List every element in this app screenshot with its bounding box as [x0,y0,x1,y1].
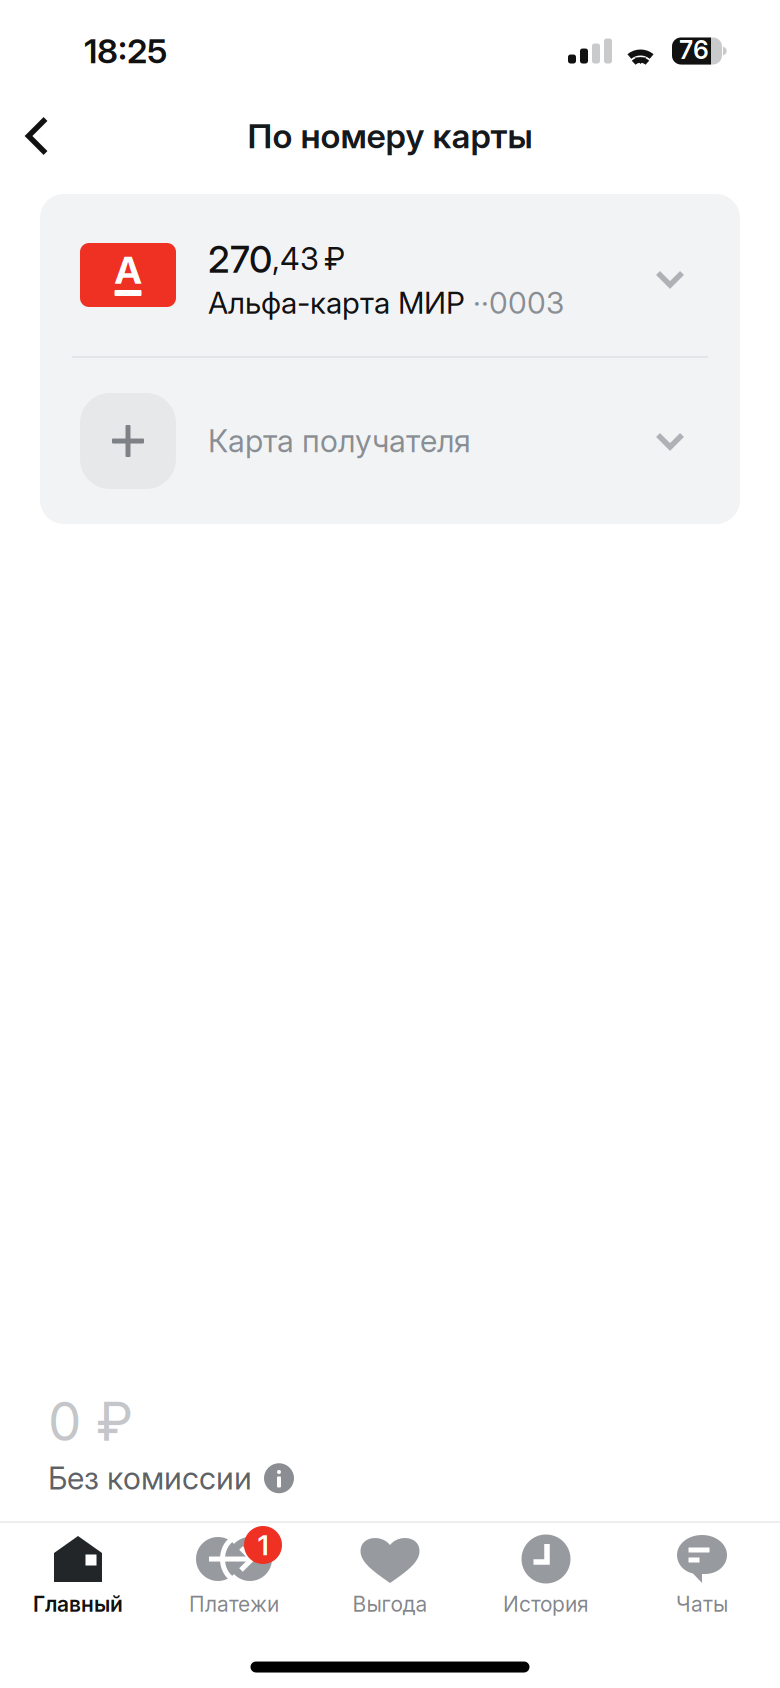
button[interactable]: Выгода [312,1525,468,1618]
staticText: 76 [679,35,709,65]
staticText: Без комиссии [48,1459,252,1497]
staticText: Карта получателя [208,422,471,460]
staticText: 0 ₽ [48,1389,133,1453]
button[interactable]: Главный [0,1525,156,1618]
staticText: ··0003 [473,285,564,321]
button[interactable]: История [468,1525,624,1618]
button[interactable]: Назад [0,102,72,169]
staticText: 270 [208,237,272,282]
staticText: Чаты [676,1591,728,1617]
staticText: Платежи [189,1591,279,1617]
staticText: История [503,1591,589,1617]
staticText: 18:25 [84,30,167,71]
staticText: По номеру карты [247,115,532,156]
button[interactable]: Карта получателя [40,358,740,524]
button[interactable]: A [40,194,740,356]
staticText: 1 [257,1528,268,1562]
staticText: Главный [33,1591,123,1617]
button[interactable]: 1 [156,1525,312,1618]
staticText: Выгода [352,1591,427,1617]
staticText: A [114,247,141,293]
staticText: ,43 ₽ [272,240,345,277]
button[interactable]: Чаты [624,1525,780,1618]
staticText: Альфа-карта МИР [208,285,473,321]
